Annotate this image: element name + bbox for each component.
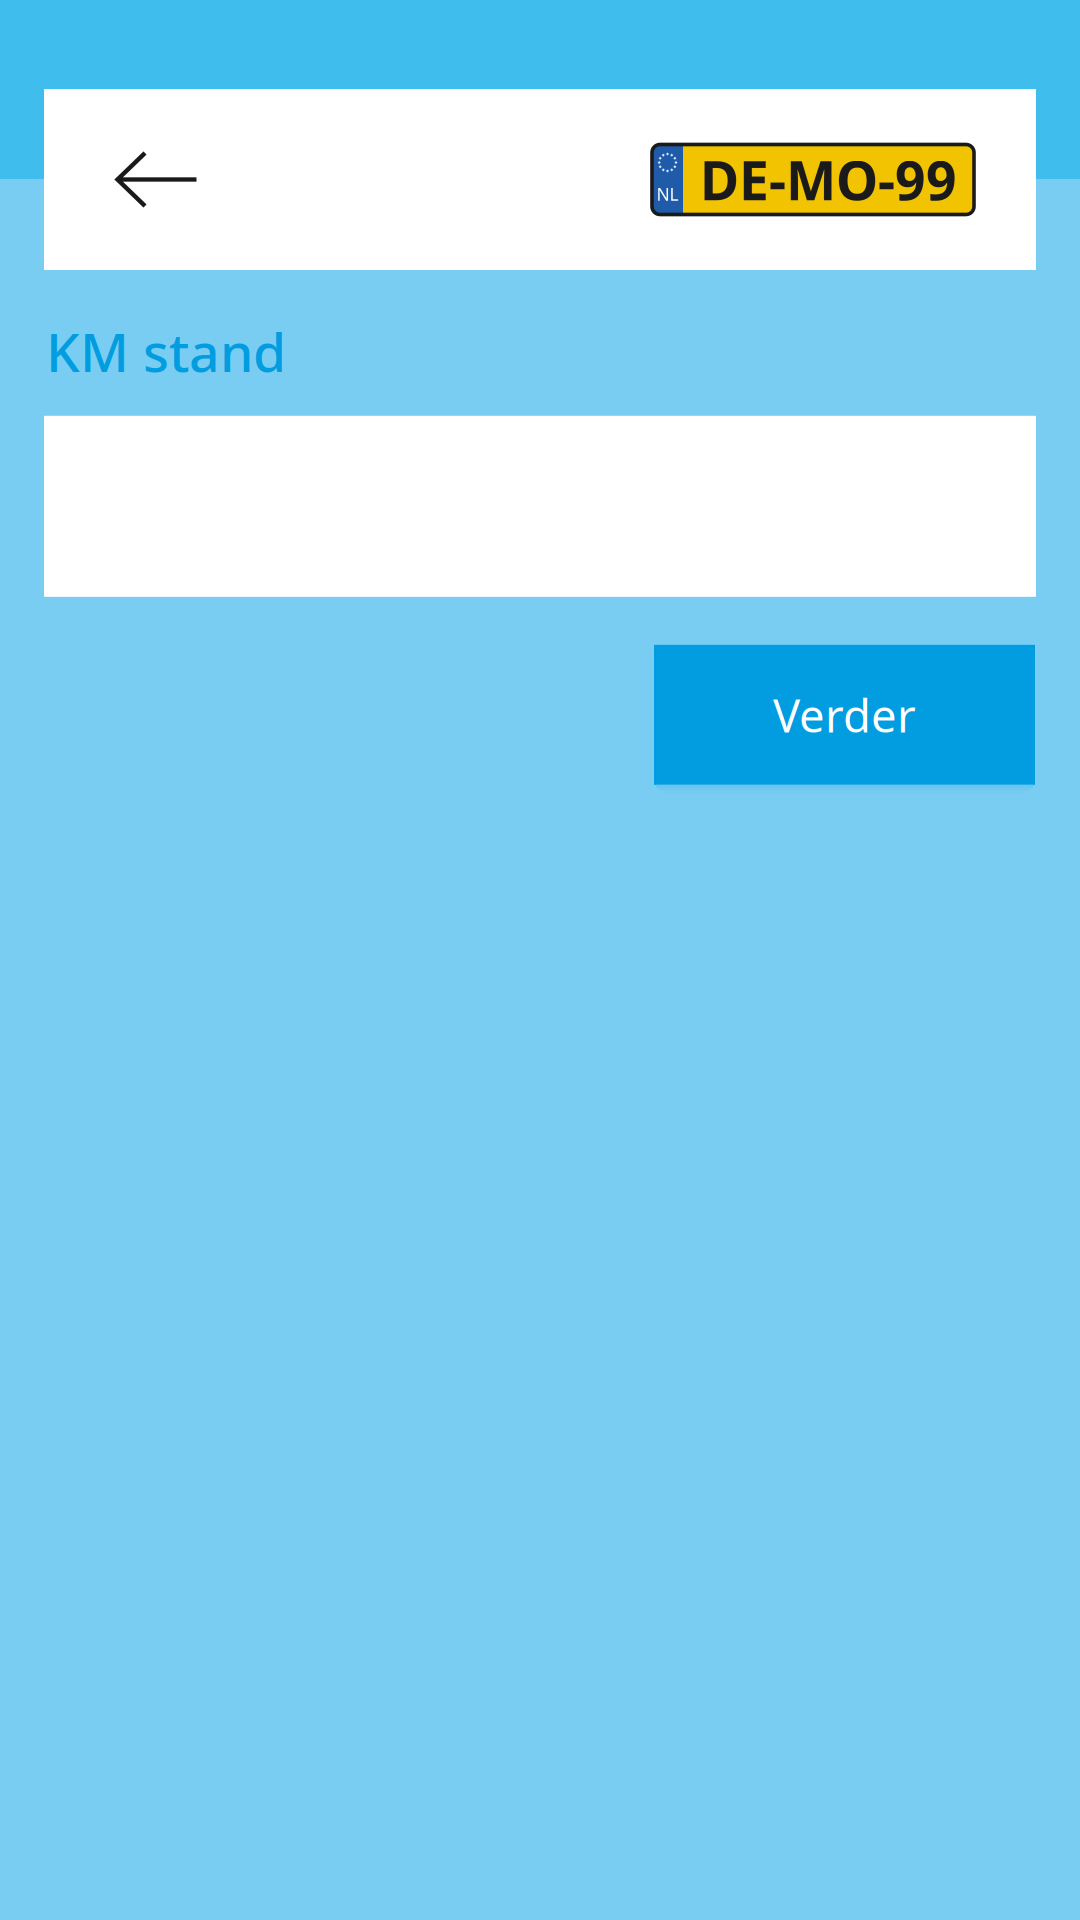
staticText: NL xyxy=(656,182,678,205)
staticText: Verder xyxy=(773,685,916,745)
staticText: DE-MO-99 xyxy=(700,144,957,215)
button[interactable]: Verder xyxy=(654,645,1035,794)
staticText: KM stand xyxy=(46,316,286,387)
button[interactable]: Kenteken DE-MO-99 xyxy=(652,144,974,214)
button[interactable]: Back xyxy=(44,89,259,270)
